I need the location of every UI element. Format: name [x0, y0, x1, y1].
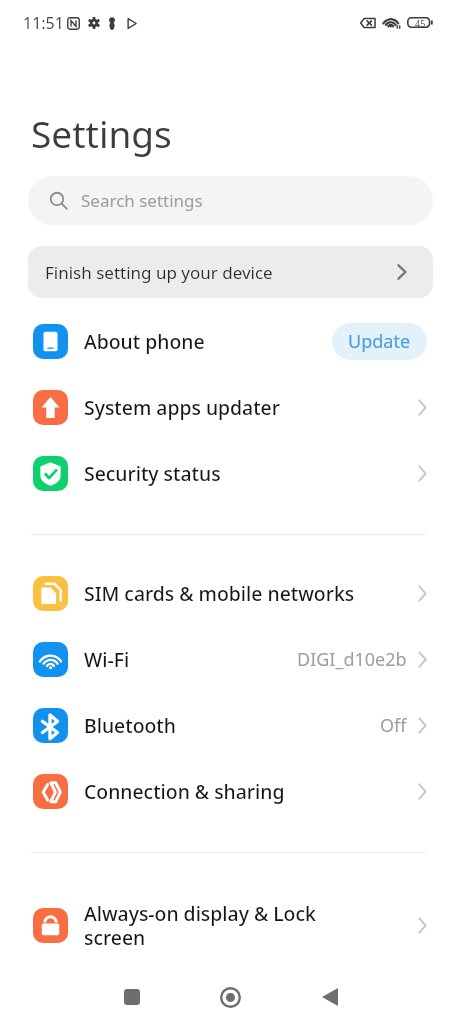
staticText: 11:51 [23, 12, 64, 34]
staticText: Always-on display & Lock screen [84, 900, 418, 951]
button[interactable]: Recent apps [82, 970, 181, 1024]
staticText: Security status [84, 460, 418, 486]
button[interactable]: Back [280, 970, 379, 1024]
staticText: Search settings [81, 189, 203, 212]
staticText: Settings [31, 108, 172, 158]
button[interactable]: Search settings [28, 176, 433, 225]
button[interactable]: Update [332, 323, 427, 360]
staticText: Wi-Fi [84, 646, 297, 672]
button[interactable]: Finish setting up your device [28, 246, 433, 298]
button[interactable]: Always-on display & Lock screen [0, 881, 461, 969]
staticText: Off [380, 713, 407, 738]
button[interactable]: Home [181, 970, 280, 1024]
button[interactable]: Connection & sharing [0, 758, 461, 824]
staticText: Update [348, 329, 411, 354]
button[interactable]: System apps updater [0, 374, 461, 440]
staticText: System apps updater [84, 394, 418, 420]
staticText: SIM cards & mobile networks [84, 580, 418, 606]
button[interactable]: Wi-Fi [0, 626, 461, 692]
button[interactable]: SIM cards & mobile networks [0, 560, 461, 626]
staticText: About phone [84, 328, 332, 354]
staticText: DIGI_d10e2b [297, 647, 407, 672]
staticText: Bluetooth [84, 712, 380, 738]
button[interactable]: Security status [0, 440, 461, 506]
staticText: Finish setting up your device [45, 261, 273, 284]
staticText: Connection & sharing [84, 778, 418, 804]
button[interactable]: About phone [0, 308, 461, 374]
staticText: 45 [415, 17, 426, 28]
button[interactable]: Bluetooth [0, 692, 461, 758]
